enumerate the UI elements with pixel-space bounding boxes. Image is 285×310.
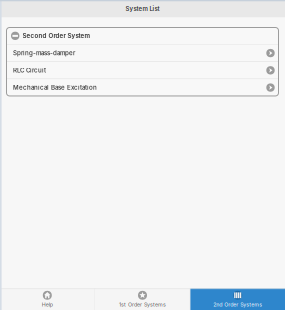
staticText: 2nd Order Systems [213,301,262,308]
button[interactable]: RLC Circuit [6,62,278,79]
staticText: Second Order System [23,32,91,39]
staticText: 1st Order Systems [119,301,166,308]
button[interactable]: 2nd Order Systems [190,288,285,310]
button[interactable]: Mechanical Base Excitation [6,79,278,96]
staticText: System List [125,5,159,12]
staticText: Help [42,301,53,308]
button[interactable]: 1st Order Systems [95,288,190,310]
staticText: Mechanical Base Excitation [13,84,97,91]
staticText: Spring-mass-damper [13,49,75,57]
button[interactable]: Help [0,288,95,310]
button[interactable]: Spring-mass-damper [6,45,278,61]
staticText: RLC Circuit [13,67,46,74]
